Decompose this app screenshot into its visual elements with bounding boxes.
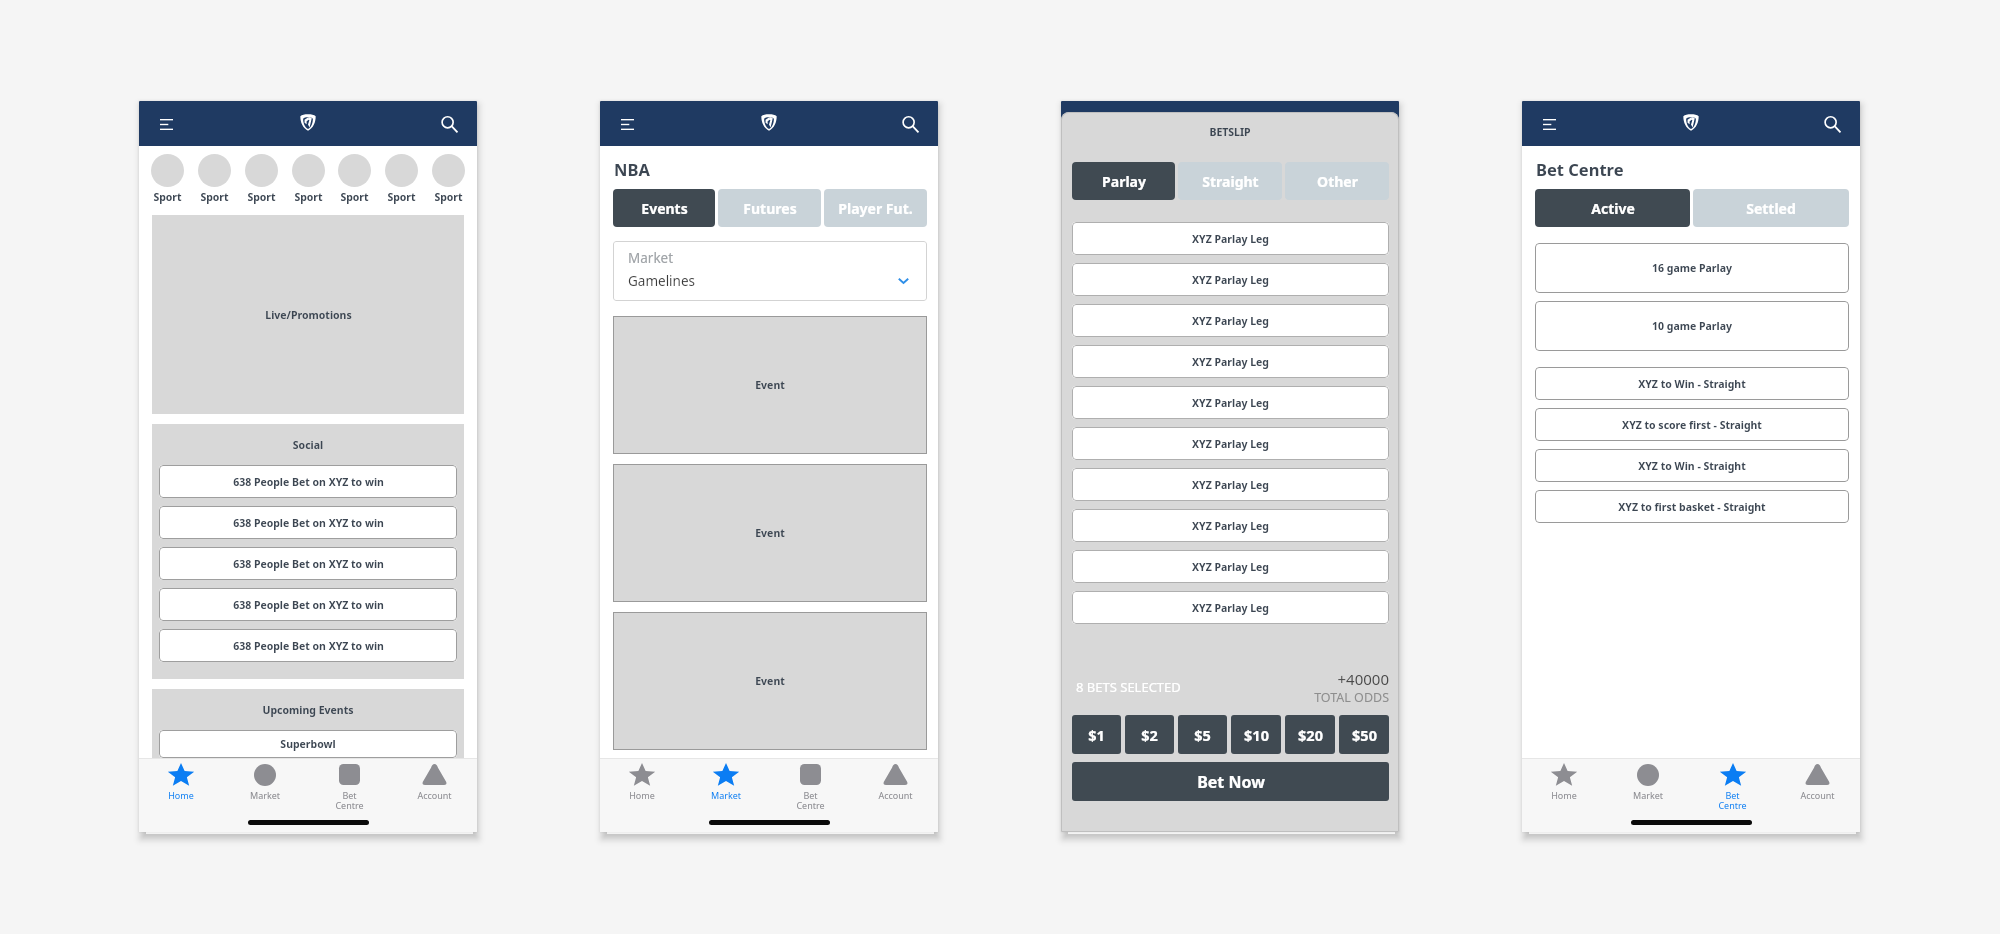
- button[interactable]: Event: [613, 464, 927, 602]
- button[interactable]: Search: [897, 111, 923, 137]
- staticText: XYZ Parlay Leg: [1192, 437, 1269, 451]
- button[interactable]: $20: [1285, 715, 1335, 754]
- button[interactable]: XYZ to score first - Straight: [1535, 408, 1849, 441]
- staticText: Sport: [151, 190, 184, 204]
- button[interactable]: XYZ Parlay Leg: [1072, 509, 1389, 542]
- staticText: Account: [853, 789, 938, 801]
- button[interactable]: XYZ Parlay Leg: [1072, 386, 1389, 419]
- button[interactable]: Events: [613, 189, 715, 227]
- button[interactable]: Other: [1285, 162, 1389, 200]
- button[interactable]: Market: [1606, 759, 1690, 811]
- button[interactable]: Bet Now: [1072, 762, 1389, 801]
- button[interactable]: Sport: [338, 154, 371, 204]
- button[interactable]: 638 People Bet on XYZ to win: [159, 629, 457, 662]
- button[interactable]: Account: [853, 759, 938, 811]
- staticText: $20: [1298, 725, 1323, 745]
- staticText: Social: [152, 438, 464, 452]
- button[interactable]: Sport: [385, 154, 418, 204]
- button[interactable]: XYZ Parlay Leg: [1072, 591, 1389, 624]
- button[interactable]: XYZ to Win - Straight: [1535, 449, 1849, 482]
- button[interactable]: XYZ Parlay Leg: [1072, 263, 1389, 296]
- button[interactable]: $2: [1125, 715, 1174, 754]
- button[interactable]: XYZ Parlay Leg: [1072, 222, 1389, 255]
- button[interactable]: Bet Centre: [1690, 759, 1775, 811]
- staticText: Player Fut.: [838, 199, 913, 218]
- button[interactable]: Home: [600, 759, 684, 811]
- button[interactable]: Home: [1522, 759, 1606, 811]
- staticText: Event: [755, 674, 785, 688]
- button[interactable]: $50: [1339, 715, 1389, 754]
- staticText: XYZ Parlay Leg: [1192, 396, 1269, 410]
- button[interactable]: Menu: [1536, 111, 1562, 137]
- button[interactable]: $5: [1178, 715, 1227, 754]
- staticText: $50: [1352, 725, 1377, 745]
- button[interactable]: XYZ Parlay Leg: [1072, 550, 1389, 583]
- button[interactable]: Market: [613, 241, 927, 301]
- button[interactable]: Event: [613, 612, 927, 750]
- button[interactable]: Superbowl: [159, 730, 457, 758]
- staticText: Home: [600, 789, 684, 801]
- staticText: Event: [755, 526, 785, 540]
- staticText: Bet Centre: [1536, 158, 1624, 180]
- button[interactable]: Home: [139, 759, 223, 811]
- button[interactable]: 638 People Bet on XYZ to win: [159, 588, 457, 621]
- staticText: Bet Centre: [307, 789, 392, 811]
- staticText: Futures: [743, 199, 797, 218]
- staticText: BETSLIP: [1061, 125, 1399, 139]
- button[interactable]: 638 People Bet on XYZ to win: [159, 547, 457, 580]
- staticText: Sport: [292, 190, 325, 204]
- button[interactable]: XYZ to Win - Straight: [1535, 367, 1849, 400]
- button[interactable]: Account: [1775, 759, 1860, 811]
- staticText: XYZ to first basket - Straight: [1618, 500, 1766, 514]
- button[interactable]: Search: [436, 111, 462, 137]
- button[interactable]: 10 game Parlay: [1535, 301, 1849, 351]
- button[interactable]: Live/Promotions: [152, 215, 464, 414]
- staticText: NBA: [614, 158, 650, 180]
- button[interactable]: Straight: [1178, 162, 1282, 200]
- staticText: Straight: [1202, 172, 1259, 191]
- staticText: XYZ to Win - Straight: [1638, 459, 1746, 473]
- button[interactable]: Sport: [245, 154, 278, 204]
- button[interactable]: XYZ Parlay Leg: [1072, 304, 1389, 337]
- staticText: Sport: [245, 190, 278, 204]
- button[interactable]: Search: [1819, 111, 1845, 137]
- button[interactable]: Sport: [198, 154, 231, 204]
- staticText: Account: [1775, 789, 1860, 801]
- button[interactable]: Market: [223, 759, 307, 811]
- staticText: Upcoming Events: [152, 703, 464, 717]
- button[interactable]: 638 People Bet on XYZ to win: [159, 506, 457, 539]
- button[interactable]: Sport: [292, 154, 325, 204]
- button[interactable]: $10: [1231, 715, 1281, 754]
- button[interactable]: Parlay: [1072, 162, 1175, 200]
- button[interactable]: Futures: [718, 189, 821, 227]
- button[interactable]: Settled: [1693, 189, 1849, 227]
- button[interactable]: XYZ Parlay Leg: [1072, 427, 1389, 460]
- button[interactable]: Bet Centre: [768, 759, 853, 811]
- button[interactable]: Sport: [151, 154, 184, 204]
- button[interactable]: 638 People Bet on XYZ to win: [159, 465, 457, 498]
- staticText: Settled: [1746, 199, 1796, 218]
- button[interactable]: Bet Centre: [307, 759, 392, 811]
- button[interactable]: Active: [1535, 189, 1690, 227]
- staticText: XYZ Parlay Leg: [1192, 355, 1269, 369]
- button[interactable]: Market: [684, 759, 768, 811]
- button[interactable]: $1: [1072, 715, 1121, 754]
- button[interactable]: Account: [392, 759, 477, 811]
- staticText: Events: [641, 199, 688, 218]
- button[interactable]: XYZ Parlay Leg: [1072, 345, 1389, 378]
- staticText: Sport: [198, 190, 231, 204]
- staticText: Parlay: [1102, 172, 1146, 191]
- button[interactable]: Player Fut.: [824, 189, 927, 227]
- staticText: XYZ Parlay Leg: [1192, 601, 1269, 615]
- button[interactable]: Menu: [153, 111, 179, 137]
- staticText: 638 People Bet on XYZ to win: [233, 516, 384, 530]
- button[interactable]: Event: [613, 316, 927, 454]
- button[interactable]: XYZ to first basket - Straight: [1535, 490, 1849, 523]
- button[interactable]: Sport: [432, 154, 465, 204]
- button[interactable]: XYZ Parlay Leg: [1072, 468, 1389, 501]
- staticText: Superbowl: [280, 737, 336, 751]
- staticText: XYZ to score first - Straight: [1622, 418, 1762, 432]
- button[interactable]: Menu: [614, 111, 640, 137]
- staticText: Sport: [338, 190, 371, 204]
- button[interactable]: 16 game Parlay: [1535, 243, 1849, 293]
